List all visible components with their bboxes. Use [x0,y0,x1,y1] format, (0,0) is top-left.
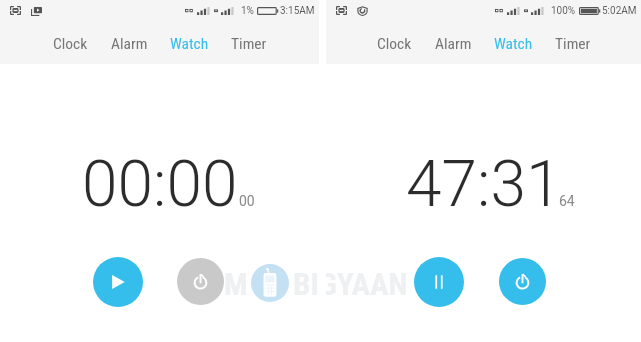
staticText: 100% [551,5,576,17]
staticText: Clock [377,35,412,53]
staticText: 47:31 [406,147,562,222]
staticText: Watch [494,35,533,53]
staticText: 64 [559,193,575,209]
button[interactable]: Alarm [433,32,474,56]
button[interactable]: Reset [499,258,546,305]
button[interactable]: Reset [177,258,224,305]
staticText: Timer [555,35,591,53]
staticText: Clock [53,35,88,53]
button[interactable]: Timer [553,32,593,56]
button[interactable]: Watch [492,32,535,56]
button[interactable]: Start [93,257,143,307]
staticText: Alarm [111,35,148,53]
staticText: 1% [241,5,254,17]
staticText: BIGYAAN [326,266,408,302]
button[interactable]: Clock [375,32,414,56]
staticText: 3:15AM [280,5,315,17]
staticText: Watch [170,35,209,53]
button[interactable]: Clock [51,32,90,56]
button[interactable]: Pause [414,257,464,307]
button[interactable]: Timer [229,32,269,56]
button[interactable]: Alarm [109,32,150,56]
staticText: Alarm [435,35,472,53]
staticText: M [224,266,248,302]
staticText: BIGYAAN [293,266,319,302]
staticText: 00:00 [82,147,238,222]
button[interactable]: Watch [168,32,211,56]
staticText: Timer [231,35,267,53]
staticText: 5:02AM [602,5,637,17]
staticText: 00 [239,193,255,209]
